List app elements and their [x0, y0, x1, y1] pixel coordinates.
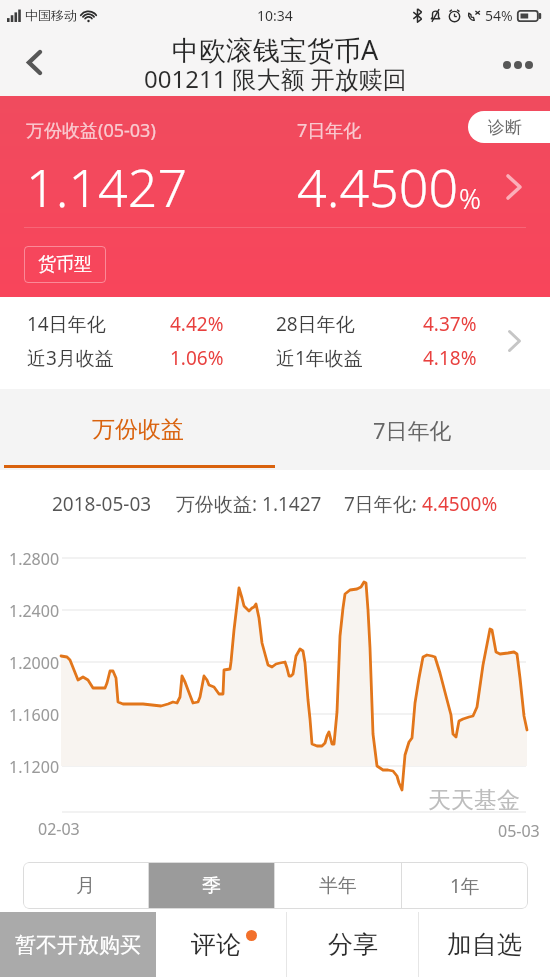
staticText: 14日年化	[27, 311, 106, 337]
staticText: 05-03	[498, 820, 540, 842]
staticText: 7日年化	[373, 415, 452, 445]
button[interactable]: 1年	[402, 862, 528, 909]
staticText: 万份收益	[92, 415, 184, 444]
staticText: 1.1600	[9, 704, 60, 726]
staticText: 中国移动	[25, 7, 77, 23]
staticText: 54%	[485, 6, 513, 25]
staticText: 半年	[319, 874, 357, 898]
staticText: 1.1427	[26, 151, 188, 222]
button[interactable]: 月	[23, 862, 148, 909]
staticText: 万份收益(05-03)	[26, 118, 156, 143]
staticText: 1.2800	[9, 548, 60, 570]
staticText: 万份收益: 1.1427	[176, 491, 322, 517]
staticText: 4.4500%	[422, 491, 498, 517]
staticText: 4.37%	[423, 311, 477, 337]
staticText: 1.06%	[170, 345, 224, 371]
staticText: 近1年收益	[276, 345, 363, 371]
staticText: 货币型	[38, 253, 92, 276]
button[interactable]: Back	[0, 30, 66, 96]
staticText: 评论	[191, 929, 241, 960]
staticText: 1.2000	[9, 652, 60, 674]
staticText: 季	[202, 874, 221, 898]
staticText: 月	[76, 874, 95, 898]
button[interactable]: 诊断	[468, 111, 550, 143]
button[interactable]: 7日年化	[275, 389, 550, 470]
staticText: 28日年化	[276, 311, 355, 337]
staticText: 2018-05-03	[52, 491, 152, 517]
staticText: 4.42%	[170, 311, 224, 337]
staticText: 10:34	[257, 6, 293, 25]
staticText: 7日年化	[297, 118, 362, 143]
staticText: 暂不开放购买	[15, 932, 141, 958]
staticText: 中欧滚钱宝货币A	[172, 31, 379, 68]
button[interactable]: 万份收益	[0, 389, 275, 470]
staticText: 1.1200	[9, 756, 60, 778]
button[interactable]: 货币型	[38, 246, 92, 283]
button[interactable]: More options	[484, 30, 550, 96]
staticText: 7日年化:	[344, 491, 422, 517]
button[interactable]: 半年	[275, 862, 401, 909]
staticText: 近3月收益	[27, 345, 114, 371]
staticText: 加自选	[447, 929, 522, 960]
button[interactable]: 14日年化	[0, 297, 550, 390]
staticText: 分享	[328, 929, 378, 960]
staticText: 4.4500	[297, 151, 459, 222]
staticText: 天天基金	[428, 786, 520, 815]
staticText: 诊断	[488, 117, 522, 138]
staticText: 1.2400	[9, 600, 60, 622]
button[interactable]: 分享	[287, 912, 418, 977]
button[interactable]: 季	[149, 862, 274, 909]
button[interactable]: 加自选	[419, 912, 550, 977]
staticText: 001211 限大额 开放赎回	[144, 62, 407, 95]
staticText: %	[459, 180, 481, 217]
staticText: 1年	[450, 873, 480, 899]
staticText: 4.18%	[423, 345, 477, 371]
staticText: 02-03	[38, 818, 80, 840]
button[interactable]: 暂不开放购买	[0, 912, 156, 977]
button[interactable]: 评论	[156, 912, 286, 977]
